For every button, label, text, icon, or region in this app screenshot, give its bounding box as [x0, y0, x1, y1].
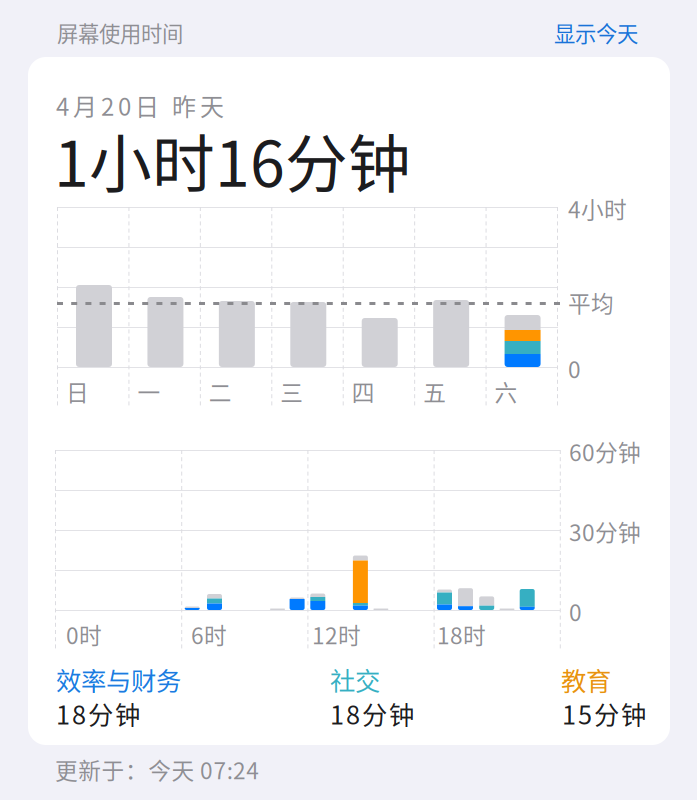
staticText: 1小时16分钟 — [54, 114, 411, 205]
staticText: 显示今天 — [554, 17, 638, 48]
staticText: 二 — [209, 375, 232, 408]
staticText: 0时 — [66, 618, 102, 651]
staticText: 0 — [568, 352, 581, 385]
staticText: 平均 — [568, 286, 614, 319]
staticText: 30分钟 — [569, 515, 641, 548]
staticText: 18分钟 — [330, 695, 414, 732]
staticText: 15分钟 — [562, 695, 646, 732]
staticText: 三 — [280, 375, 303, 408]
staticText: 教育 — [561, 661, 611, 698]
staticText: 六 — [495, 375, 518, 408]
staticText: 效率与财务 — [56, 661, 181, 698]
staticText: 一 — [137, 375, 160, 408]
staticText: 6时 — [191, 618, 227, 651]
staticText: 社交 — [330, 661, 380, 698]
staticText: 0 — [569, 595, 582, 628]
staticText: 更新于：今天 07:24 — [55, 753, 259, 786]
staticText: 四 — [352, 375, 375, 408]
staticText: 12时 — [312, 618, 361, 651]
staticText: 18时 — [437, 618, 486, 651]
button[interactable]: 显示今天 — [554, 17, 638, 48]
button[interactable]: 屏幕使用时间 — [57, 17, 183, 48]
staticText: 五 — [423, 375, 446, 408]
staticText: 日 — [66, 375, 89, 408]
staticText: 60分钟 — [569, 435, 641, 468]
staticText: 4月20日 昨天 — [56, 88, 224, 123]
staticText: 屏幕使用时间 — [57, 17, 183, 48]
staticText: 4小时 — [568, 192, 627, 225]
staticText: 18分钟 — [56, 695, 140, 732]
